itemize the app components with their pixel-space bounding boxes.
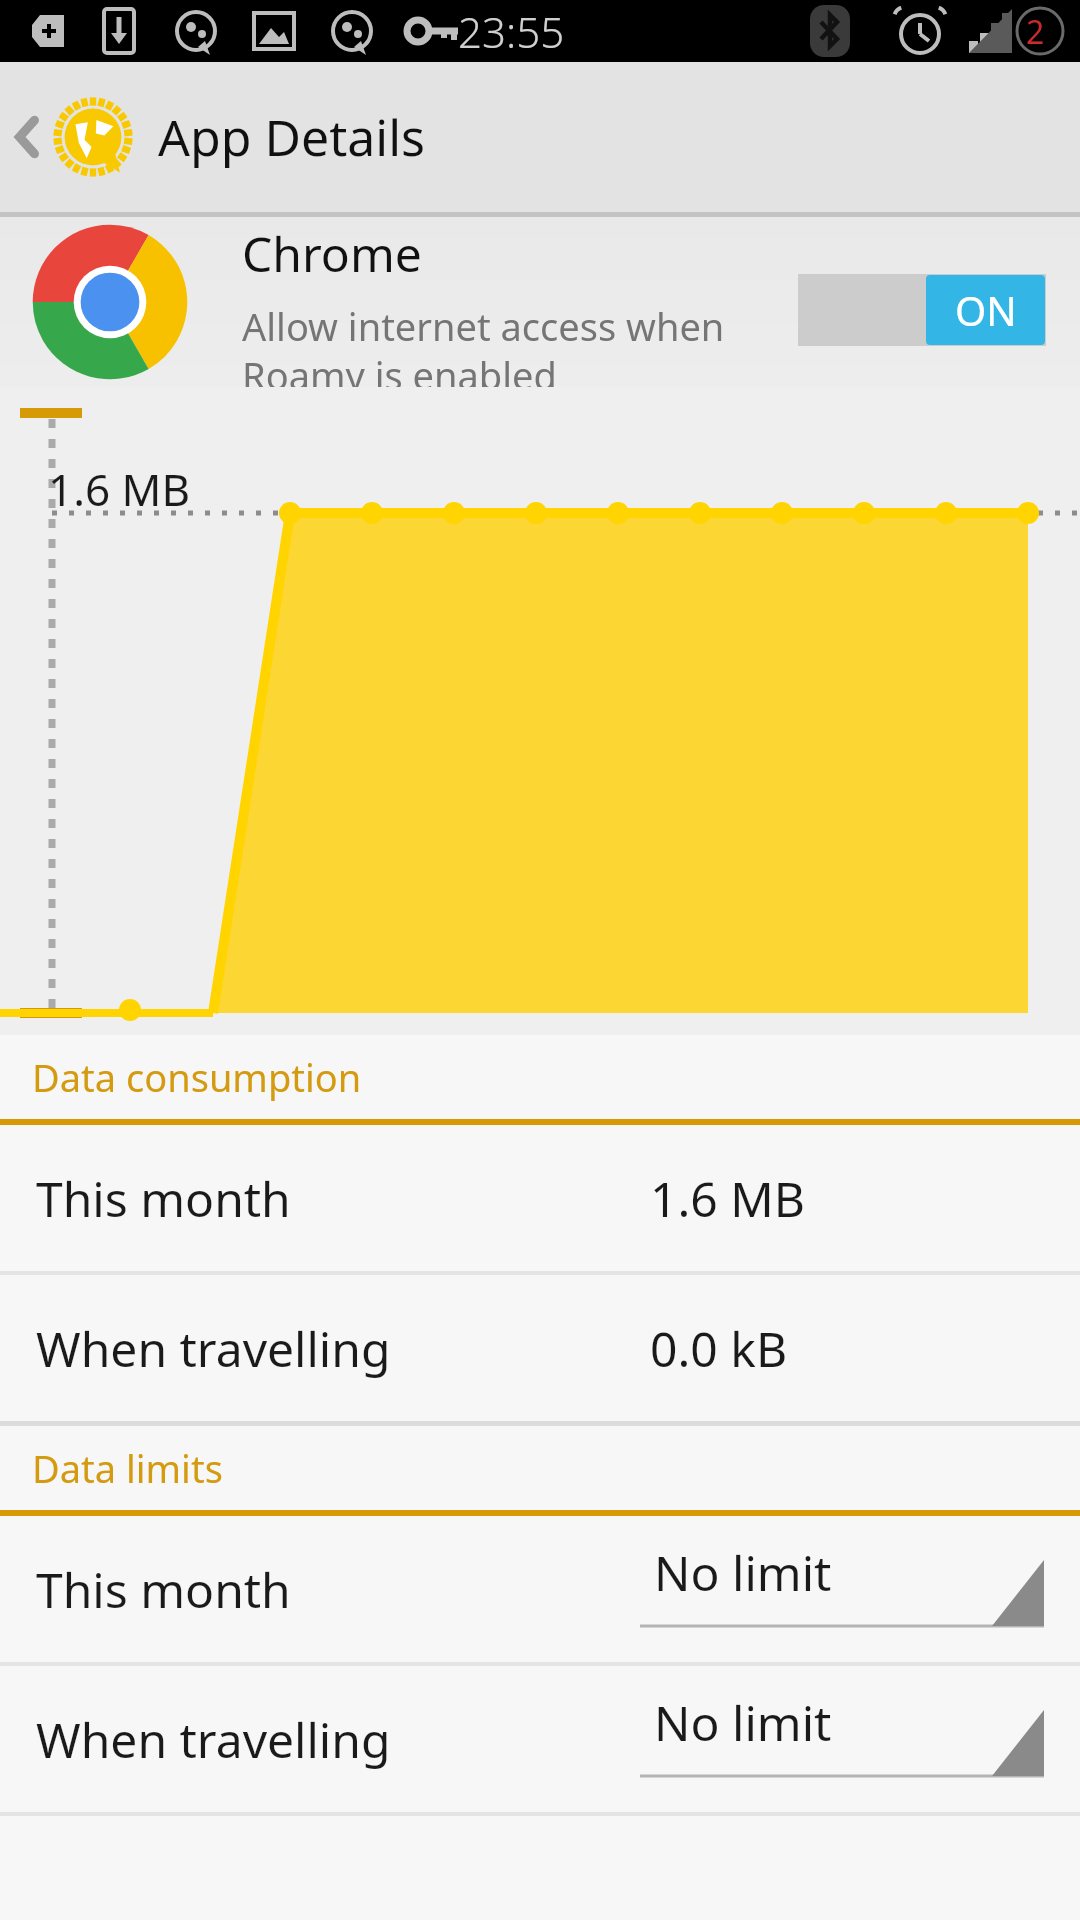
staticText: 1.6 MB: [650, 1166, 805, 1231]
button[interactable]: This month: [0, 1516, 1080, 1662]
button[interactable]: When travelling: [0, 1666, 1080, 1812]
staticText: Chrome: [242, 221, 422, 286]
staticText: This month: [36, 1557, 291, 1622]
staticText: This month: [36, 1166, 291, 1231]
button[interactable]: This month: [0, 1125, 1080, 1271]
staticText: Data limits: [32, 1442, 223, 1494]
staticText: Allow internet access when Roamy is enab…: [242, 300, 725, 387]
staticText: Data consumption: [32, 1051, 362, 1103]
staticText: No limit: [654, 1690, 832, 1755]
button[interactable]: Back: [0, 94, 142, 180]
staticText: When travelling: [36, 1316, 391, 1381]
staticText: 2: [1026, 10, 1045, 54]
staticText: ON: [955, 283, 1017, 337]
staticText: No limit: [654, 1540, 832, 1605]
staticText: 1.6 MB: [48, 459, 191, 519]
staticText: When travelling: [36, 1707, 391, 1772]
button[interactable]: Allow internet access toggle, on: [798, 274, 1046, 346]
staticText: 0.0 kB: [650, 1316, 788, 1381]
staticText: App Details: [158, 103, 425, 171]
staticText: 23:55: [458, 3, 565, 60]
button[interactable]: When travelling: [0, 1275, 1080, 1421]
